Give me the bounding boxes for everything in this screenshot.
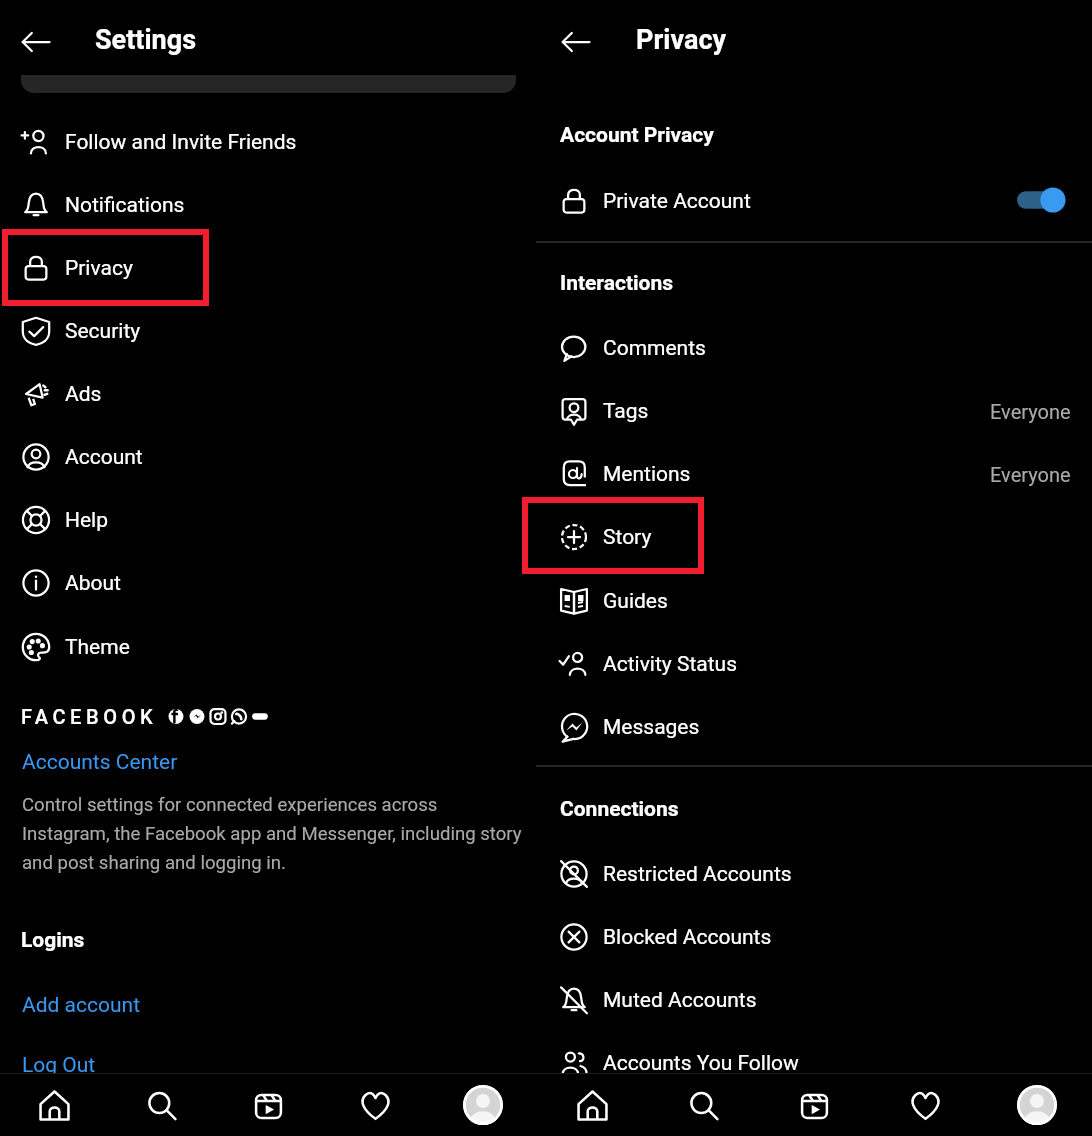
staticText: Settings [95, 24, 197, 56]
button[interactable]: Guides [536, 570, 1092, 632]
button[interactable]: Follow and Invite Friends [0, 111, 536, 173]
staticText: Account [65, 445, 143, 470]
staticText: Connections [560, 797, 679, 822]
staticText: Theme [65, 635, 130, 660]
staticText: Control settings for connected experienc… [22, 794, 528, 873]
button[interactable]: Activity Status [536, 633, 1092, 695]
button[interactable]: Accounts Center [22, 750, 178, 775]
button[interactable]: Muted Accounts [536, 969, 1092, 1031]
staticText: Help [65, 508, 109, 533]
staticText: Add account [22, 993, 141, 1018]
button[interactable]: Accounts You Follow [536, 1032, 1092, 1094]
button[interactable]: Likes [322, 1074, 429, 1136]
button[interactable]: Tags [536, 380, 1092, 442]
button[interactable]: Mentions [536, 443, 1092, 505]
staticText: Accounts You Follow [603, 1051, 799, 1076]
button[interactable]: Log Out [22, 1053, 96, 1078]
button[interactable]: Profile [981, 1074, 1092, 1136]
button[interactable]: Private Account toggle [1017, 184, 1066, 216]
staticText: Logins [21, 928, 85, 953]
button[interactable]: Profile [429, 1074, 536, 1136]
button[interactable]: Add account [22, 993, 141, 1018]
staticText: Story [603, 525, 652, 550]
button[interactable]: Back [550, 16, 602, 68]
staticText: Tags [603, 399, 649, 424]
button[interactable]: Security [0, 300, 536, 362]
button[interactable]: Back [10, 16, 62, 68]
staticText: Mentions [603, 462, 691, 487]
staticText: Messages [603, 715, 700, 740]
staticText: Interactions [560, 271, 674, 296]
button[interactable]: Reels [215, 1074, 322, 1136]
staticText: Log Out [22, 1053, 96, 1078]
staticText: Private Account [603, 189, 751, 214]
staticText: Activity Status [603, 652, 738, 677]
button[interactable]: Messages [536, 696, 1092, 758]
staticText: Privacy [636, 24, 727, 56]
button[interactable]: About [0, 552, 536, 614]
staticText: Notifications [65, 193, 185, 218]
button[interactable]: Search [108, 1074, 215, 1136]
button[interactable]: Private Account [536, 170, 1092, 232]
button[interactable]: Privacy [0, 237, 536, 299]
staticText: About [65, 571, 121, 596]
staticText: Security [65, 319, 141, 344]
staticText: Muted Accounts [603, 988, 757, 1013]
button[interactable]: Reels [759, 1074, 870, 1136]
button[interactable]: Search [648, 1074, 759, 1136]
staticText: Everyone [990, 463, 1071, 486]
staticText: Everyone [990, 400, 1071, 423]
staticText: Restricted Accounts [603, 862, 792, 887]
staticText: Accounts Center [22, 750, 178, 775]
staticText: Comments [603, 336, 706, 361]
staticText: Account Privacy [560, 123, 714, 148]
button[interactable]: Account [0, 426, 536, 488]
staticText: Blocked Accounts [603, 925, 772, 950]
staticText: Privacy [65, 256, 133, 281]
button[interactable]: Story [536, 506, 1092, 568]
staticText: FACEBOOK [21, 705, 158, 728]
button[interactable]: Search [21, 75, 516, 93]
button[interactable]: Blocked Accounts [536, 906, 1092, 968]
button[interactable]: Ads [0, 363, 536, 425]
button[interactable]: Comments [536, 317, 1092, 379]
button[interactable]: Notifications [0, 174, 536, 236]
button[interactable]: Home [0, 1074, 108, 1136]
staticText: Ads [65, 382, 102, 407]
button[interactable]: Restricted Accounts [536, 843, 1092, 905]
button[interactable]: Home [536, 1074, 648, 1136]
staticText: Follow and Invite Friends [65, 130, 297, 155]
button[interactable]: Help [0, 489, 536, 551]
button[interactable]: Likes [870, 1074, 981, 1136]
button[interactable]: Theme [0, 616, 536, 678]
staticText: Guides [603, 589, 668, 614]
